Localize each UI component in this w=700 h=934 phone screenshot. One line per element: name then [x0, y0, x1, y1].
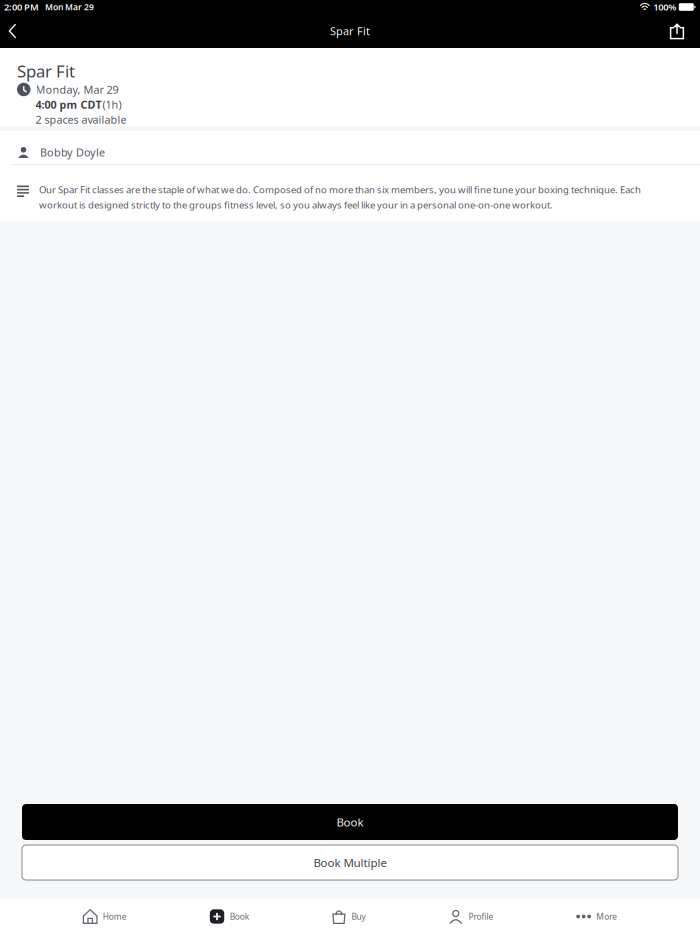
staticText: More [596, 911, 617, 922]
staticText: Book [336, 814, 363, 830]
button[interactable]: Back [0, 14, 25, 48]
button[interactable]: Share [654, 14, 700, 48]
button[interactable]: Book Multiple [22, 845, 678, 880]
button[interactable]: Book [209, 899, 249, 934]
staticText: Home [103, 911, 127, 922]
staticText: Spar Fit [17, 60, 75, 82]
button[interactable]: Book [22, 804, 678, 840]
button[interactable]: Buy [331, 899, 366, 934]
staticText: Mon Mar 29 [45, 1, 94, 13]
staticText: Spar Fit [330, 24, 370, 38]
staticText: Buy [352, 911, 366, 922]
staticText: Book [230, 911, 249, 922]
staticText: 100% [653, 1, 676, 13]
button[interactable]: Profile [448, 899, 493, 934]
staticText: Our Spar Fit classes are the staple of w… [39, 183, 641, 211]
staticText: 4:00 pm CDT [35, 97, 101, 112]
staticText: (1h) [102, 97, 121, 112]
staticText: Monday, Mar 29 [35, 82, 118, 97]
button[interactable]: More [576, 899, 617, 934]
staticText: Bobby Doyle [40, 145, 105, 160]
button[interactable]: Home [83, 899, 127, 934]
staticText: 2:00 PM [4, 1, 39, 13]
staticText: Book Multiple [313, 855, 386, 870]
staticText: 2 spaces available [35, 112, 126, 127]
staticText: Profile [468, 911, 493, 922]
